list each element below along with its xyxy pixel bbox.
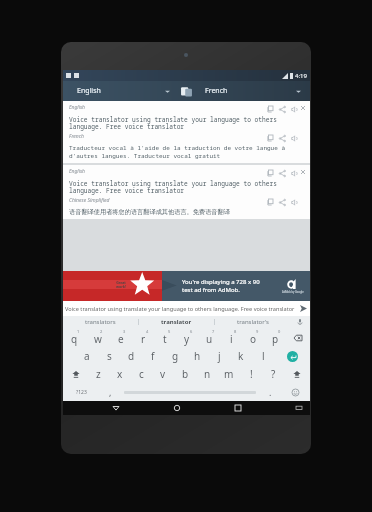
button[interactable]: Great work! — [63, 271, 310, 301]
button[interactable]: n — [196, 365, 218, 383]
button[interactable]: Enter — [274, 347, 310, 365]
button[interactable]: Voice input — [290, 316, 310, 328]
staticText: 6 — [190, 329, 193, 334]
button[interactable]: Speak — [289, 133, 299, 143]
button[interactable]: Share — [277, 104, 287, 114]
button[interactable]: s — [98, 347, 120, 365]
staticText: 语音翻译使用者将您的语言翻译成其他语言。免费语音翻译 — [69, 208, 230, 216]
button[interactable]: Send — [297, 302, 310, 315]
button[interactable]: 5 — [154, 328, 176, 347]
staticText: m — [224, 367, 234, 381]
button[interactable]: 8 — [220, 328, 242, 347]
button[interactable]: j — [208, 347, 230, 365]
staticText: 7 — [212, 329, 215, 334]
button[interactable]: 1 — [63, 328, 86, 347]
button[interactable]: Shift — [284, 365, 310, 383]
staticText: AdMob by Google — [282, 290, 304, 294]
staticText: French — [205, 86, 228, 96]
button[interactable]: Speak — [289, 168, 299, 178]
button[interactable]: Share — [277, 197, 287, 207]
button[interactable]: Share — [277, 133, 287, 143]
button[interactable]: g — [164, 347, 186, 365]
button[interactable]: Emoji — [281, 383, 310, 401]
staticText: Voice translator using translate your la… — [69, 115, 304, 131]
button[interactable]: 6 — [176, 328, 198, 347]
staticText: 5 — [168, 329, 171, 334]
button[interactable]: Voice translator using translate your la… — [63, 301, 310, 316]
button[interactable]: Close — [299, 168, 307, 176]
staticText: English — [77, 86, 101, 96]
staticText: Voice translator using translate your la… — [65, 305, 297, 313]
button[interactable]: Hide keyboard — [292, 401, 306, 415]
button[interactable]: Space — [121, 383, 259, 401]
staticText: s — [107, 349, 112, 363]
button[interactable]: v — [152, 365, 174, 383]
button[interactable]: Home — [170, 401, 184, 415]
staticText: y — [184, 332, 190, 346]
button[interactable]: ? — [262, 365, 284, 383]
button[interactable]: translator — [139, 316, 214, 328]
staticText: x — [117, 367, 123, 381]
staticText: English — [69, 168, 85, 175]
button[interactable]: 4 — [132, 328, 154, 347]
button[interactable]: Share — [277, 168, 287, 178]
button[interactable]: d — [120, 347, 142, 365]
staticText: translator — [161, 318, 192, 326]
button[interactable]: Copy — [265, 133, 275, 143]
button[interactable]: Copy — [265, 197, 275, 207]
button[interactable]: Shift — [63, 365, 88, 383]
button[interactable]: Close — [299, 104, 307, 112]
button[interactable]: 9 — [242, 328, 264, 347]
button[interactable]: b — [174, 365, 196, 383]
button[interactable]: Back — [109, 401, 123, 415]
staticText: n — [204, 367, 211, 381]
staticText: English — [69, 104, 85, 111]
staticText: z — [96, 367, 101, 381]
staticText: 4 — [146, 329, 149, 334]
button[interactable]: ! — [240, 365, 262, 383]
staticText: . — [269, 386, 272, 398]
button[interactable]: 3 — [109, 328, 132, 347]
button[interactable]: , — [99, 383, 121, 401]
button[interactable]: l — [252, 347, 274, 365]
staticText: l — [262, 349, 265, 363]
button[interactable]: Copy — [265, 168, 275, 178]
staticText: 2 — [100, 329, 103, 334]
button[interactable]: 0 — [264, 328, 286, 347]
staticText: q — [71, 332, 78, 346]
button[interactable]: Speak — [289, 197, 299, 207]
button[interactable]: ?123 — [63, 383, 99, 401]
button[interactable]: Speak — [289, 104, 299, 114]
button[interactable]: f — [142, 347, 164, 365]
staticText: 8 — [234, 329, 237, 334]
staticText: Traducteur vocal à l'aide de la traducti… — [69, 144, 304, 160]
button[interactable]: z — [88, 365, 109, 383]
staticText: 3 — [123, 329, 126, 334]
button[interactable]: English — [63, 81, 180, 101]
staticText: k — [238, 349, 244, 363]
button[interactable]: a — [75, 347, 98, 365]
button[interactable]: Copy — [265, 104, 275, 114]
button[interactable]: French — [193, 81, 310, 101]
staticText: i — [230, 332, 233, 346]
button[interactable]: translators — [63, 316, 138, 328]
staticText: 4:19 — [295, 72, 307, 80]
button[interactable]: . — [259, 383, 281, 401]
button[interactable]: m — [218, 365, 240, 383]
staticText: ? — [271, 367, 276, 381]
staticText: v — [160, 367, 166, 381]
button[interactable]: k — [230, 347, 252, 365]
button[interactable]: 2 — [86, 328, 109, 347]
button[interactable]: Backspace — [286, 328, 310, 347]
button[interactable]: x — [109, 365, 130, 383]
staticText: o — [250, 332, 257, 346]
button[interactable]: c — [130, 365, 152, 383]
staticText: e — [118, 332, 124, 346]
button[interactable]: translator's — [215, 316, 290, 328]
button[interactable]: Swap languages — [180, 85, 193, 98]
staticText: translator's — [237, 318, 269, 326]
button[interactable]: h — [186, 347, 208, 365]
staticText: French — [69, 133, 84, 140]
button[interactable]: 7 — [198, 328, 220, 347]
button[interactable]: Recents — [231, 401, 245, 415]
